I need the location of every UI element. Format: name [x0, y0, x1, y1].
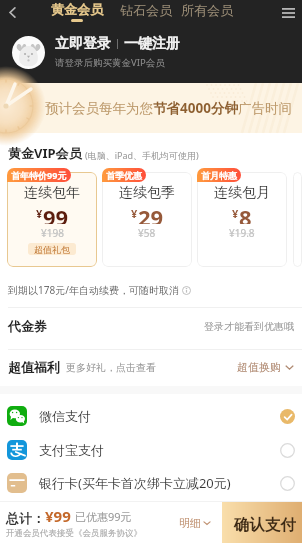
button[interactable]: 黄金会员 — [51, 1, 103, 25]
staticText: 黄金会员 — [51, 1, 103, 17]
staticText: ¥19.8 — [229, 226, 255, 240]
staticText: ¥58 — [138, 226, 156, 240]
button[interactable]: 立即登录 — [12, 35, 302, 69]
button[interactable]: 明细 — [179, 516, 211, 530]
button[interactable]: 确认支付 — [222, 502, 302, 543]
staticText: 支付宝支付 — [39, 442, 104, 458]
button[interactable]: 代金券 — [8, 308, 294, 344]
staticText: 29 — [138, 202, 164, 224]
staticText: 所有会员 — [181, 2, 233, 18]
staticText: 8 — [239, 202, 252, 224]
button[interactable]: 银行卡(买年卡首次绑卡立减20元) — [7, 467, 295, 499]
button[interactable]: 连续包季 — [102, 168, 192, 268]
staticText: 连续包年 — [24, 184, 80, 202]
button[interactable]: 超值福利 — [8, 350, 294, 384]
staticText: 99 — [43, 202, 69, 224]
button[interactable]: 微信支付 — [7, 399, 295, 433]
staticText: 钻石会员 — [120, 2, 172, 18]
staticText: 一键注册 — [124, 35, 180, 53]
staticText: ¥ — [36, 206, 43, 221]
button[interactable]: 支付宝支付 — [7, 433, 295, 467]
staticText: 节省4000分钟 — [153, 99, 238, 117]
staticText: 超值福利 — [8, 359, 60, 375]
staticText: 连续包季 — [119, 184, 175, 202]
staticText: ¥198 — [41, 226, 64, 240]
staticText: 确认支付 — [234, 515, 296, 535]
button[interactable]: 连续包月 — [197, 168, 287, 268]
staticText: 立即登录 — [55, 35, 111, 53]
staticText: 超值换购 — [237, 360, 281, 374]
button[interactable]: 连续包年 — [7, 168, 97, 268]
staticText: 银行卡(买年卡首次绑卡立减20元) — [39, 474, 231, 492]
staticText: 连续包月 — [214, 184, 270, 202]
staticText: ¥99 — [45, 506, 71, 526]
button[interactable]: 钻石会员 — [120, 2, 172, 18]
button[interactable]: Back — [0, 0, 25, 25]
staticText: 广告时间 — [238, 100, 292, 117]
staticText: 微信支付 — [39, 408, 91, 424]
staticText: 到期以178元/年自动续费，可随时取消 — [8, 283, 179, 297]
button[interactable]: Menu — [274, 0, 302, 25]
staticText: 预计会员每年为您 — [45, 100, 153, 117]
staticText: 登录才能看到优惠哦 — [204, 320, 294, 333]
staticText: 请登录后购买黄金VIP会员 — [55, 56, 165, 69]
staticText: ¥ — [131, 206, 138, 221]
staticText: 首年特价99元 — [11, 169, 67, 181]
staticText: ¥ — [232, 206, 239, 221]
button[interactable]: 所有会员 — [181, 2, 233, 18]
staticText: (电脑、iPad、手机均可使用) — [85, 149, 199, 161]
staticText: 已优惠99元 — [75, 509, 132, 524]
staticText: 开通会员代表接受《会员服务协议》 — [6, 528, 142, 539]
staticText: 黄金VIP会员 — [8, 144, 82, 162]
staticText: 首月特惠 — [201, 170, 237, 181]
staticText: 总计： — [6, 510, 45, 526]
staticText: 更多好礼，点击查看 — [66, 361, 156, 374]
staticText: 超值礼包 — [34, 244, 70, 255]
staticText: 首季优惠 — [106, 170, 142, 181]
staticText: 代金券 — [8, 318, 47, 334]
staticText: 明细 — [179, 516, 201, 530]
